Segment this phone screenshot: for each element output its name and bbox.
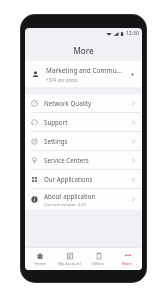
- button[interactable]: Marketing and Communication De…: [25, 61, 142, 87]
- staticText: Network Quality: [44, 99, 92, 107]
- staticText: More: [73, 45, 94, 56]
- button[interactable]: Support: [25, 113, 142, 131]
- staticText: Settings: [44, 137, 68, 145]
- button[interactable]: My Account: [55, 248, 84, 270]
- staticText: Offers: [92, 261, 105, 267]
- staticText: +374 xxx xxxxx: [46, 77, 78, 83]
- staticText: About application: [44, 192, 96, 200]
- staticText: Service Centers: [44, 156, 89, 164]
- button[interactable]: Our Applications: [25, 170, 142, 188]
- staticText: Current version: 2.21: [44, 201, 87, 207]
- staticText: More: [122, 261, 133, 267]
- staticText: Marketing and Communication De…: [46, 66, 125, 75]
- button[interactable]: Service Centers: [25, 151, 142, 169]
- button[interactable]: About application: [25, 189, 142, 210]
- button[interactable]: Network Quality: [25, 94, 142, 112]
- button[interactable]: More: [113, 248, 142, 270]
- staticText: Our Applications: [44, 175, 93, 183]
- button[interactable]: Settings: [25, 132, 142, 150]
- staticText: Home: [34, 261, 46, 267]
- button[interactable]: Home: [25, 248, 55, 270]
- staticText: Support: [44, 118, 68, 126]
- button[interactable]: Offers: [84, 248, 113, 270]
- staticText: 12:30: [126, 30, 139, 37]
- staticText: My Account: [58, 261, 81, 267]
